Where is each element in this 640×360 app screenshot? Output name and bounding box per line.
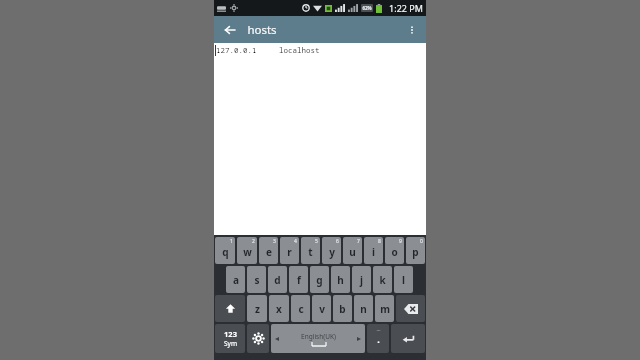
button[interactable]: z	[247, 295, 267, 322]
button[interactable]: f	[289, 266, 308, 293]
button[interactable]: 2	[237, 237, 257, 264]
button[interactable]: a	[226, 266, 245, 293]
button[interactable]: 6	[322, 237, 341, 264]
button[interactable]: Period	[367, 324, 389, 353]
staticText: b	[339, 302, 346, 316]
staticText: 0	[420, 238, 423, 245]
button[interactable]: 3	[259, 237, 278, 264]
button[interactable]: Shift	[215, 295, 245, 322]
staticText: English(UK)	[301, 332, 336, 341]
staticText: 7	[357, 238, 360, 245]
staticText: x	[276, 302, 282, 316]
button[interactable]: More options	[401, 19, 423, 41]
button[interactable]: 0	[406, 237, 425, 264]
staticText: d	[274, 273, 281, 287]
staticText: o	[391, 245, 398, 259]
button[interactable]: Delete	[396, 295, 425, 322]
staticText: w	[243, 245, 252, 259]
button[interactable]: Enter	[391, 324, 425, 353]
button[interactable]: 127.0.0.1 localhost	[214, 43, 426, 235]
button[interactable]: 1	[215, 237, 235, 264]
staticText: s	[254, 273, 260, 287]
staticText: z	[255, 302, 260, 316]
staticText: 9	[399, 238, 402, 245]
staticText: hosts	[247, 22, 277, 38]
button[interactable]: 8	[364, 237, 383, 264]
staticText: k	[379, 273, 386, 287]
staticText: 4	[294, 238, 297, 245]
button[interactable]: Back	[219, 19, 241, 41]
staticText: 2	[252, 238, 255, 245]
button[interactable]: 5	[301, 237, 320, 264]
button[interactable]: k	[373, 266, 392, 293]
staticText: l	[402, 273, 405, 287]
button[interactable]: 7	[343, 237, 362, 264]
staticText: t	[308, 245, 313, 259]
staticText: p	[412, 245, 419, 259]
staticText: f	[297, 273, 301, 287]
staticText: j	[360, 273, 363, 287]
button[interactable]: l	[394, 266, 413, 293]
staticText: ...	[376, 326, 381, 333]
button[interactable]: g	[310, 266, 329, 293]
staticText: y	[329, 245, 335, 259]
staticText: v	[319, 302, 325, 316]
staticText: i	[372, 245, 375, 259]
staticText: 8	[378, 238, 381, 245]
staticText: 127.0.0.1 localhost	[216, 45, 320, 55]
button[interactable]: Settings	[247, 324, 269, 353]
staticText: q	[222, 245, 229, 259]
staticText: .	[377, 333, 380, 345]
staticText: m	[380, 302, 390, 316]
staticText: 1:22 PM	[389, 2, 423, 14]
staticText: g	[316, 273, 323, 287]
button[interactable]: s	[247, 266, 266, 293]
button[interactable]: x	[269, 295, 289, 322]
button[interactable]: Space	[271, 324, 365, 353]
button[interactable]: 123	[215, 324, 245, 353]
button[interactable]: c	[291, 295, 310, 322]
staticText: 62%	[362, 5, 372, 11]
staticText: h	[337, 273, 344, 287]
button[interactable]: n	[354, 295, 373, 322]
staticText: a	[233, 273, 239, 287]
button[interactable]: b	[333, 295, 352, 322]
button[interactable]: j	[352, 266, 371, 293]
button[interactable]: 4	[280, 237, 299, 264]
staticText: 5	[315, 238, 318, 245]
staticText: 123	[224, 329, 237, 339]
button[interactable]: h	[331, 266, 350, 293]
staticText: Sym	[224, 339, 237, 348]
button[interactable]: v	[312, 295, 331, 322]
button[interactable]: 9	[385, 237, 404, 264]
staticText: e	[266, 245, 272, 259]
staticText: 3	[273, 238, 276, 245]
staticText: c	[298, 302, 304, 316]
button[interactable]: d	[268, 266, 287, 293]
staticText: n	[360, 302, 367, 316]
staticText: r	[287, 245, 292, 259]
staticText: 1	[230, 238, 233, 245]
button[interactable]: m	[375, 295, 394, 322]
staticText: 6	[336, 238, 339, 245]
staticText: u	[349, 245, 356, 259]
